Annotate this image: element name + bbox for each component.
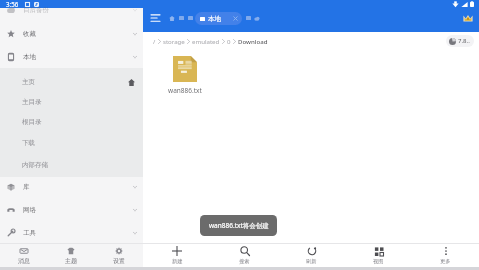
button[interactable]: 消息 bbox=[0, 244, 47, 267]
button[interactable]: Tab bbox=[188, 16, 193, 20]
button[interactable]: 内部存储 bbox=[0, 157, 143, 173]
staticText: 主题 bbox=[65, 257, 77, 265]
button[interactable]: 本地 bbox=[195, 12, 242, 25]
staticText: 搜索 bbox=[239, 258, 250, 265]
button[interactable]: 视图 bbox=[345, 244, 412, 267]
button[interactable] bbox=[173, 56, 197, 82]
button[interactable]: 设置 bbox=[95, 244, 143, 267]
button[interactable]: Menu bbox=[148, 10, 162, 26]
staticText: 收藏 bbox=[23, 30, 36, 38]
staticText: 目后备份 bbox=[23, 6, 49, 14]
button[interactable]: 库 bbox=[0, 179, 143, 195]
button[interactable]: VIP bbox=[462, 12, 474, 24]
staticText: 视图 bbox=[373, 258, 384, 265]
button[interactable]: 主页 bbox=[0, 74, 143, 90]
staticText: wan886.txt bbox=[168, 86, 202, 95]
button[interactable]: / bbox=[153, 37, 156, 45]
staticText: 本地 bbox=[23, 53, 36, 61]
staticText: 刷新 bbox=[306, 258, 317, 265]
button[interactable]: Home tab bbox=[169, 16, 175, 21]
staticText: 7.8.. bbox=[458, 37, 470, 45]
button[interactable]: 主目录 bbox=[0, 94, 143, 110]
staticText: 主页 bbox=[22, 78, 35, 86]
button[interactable]: 更多 bbox=[412, 244, 479, 267]
staticText: 主目录 bbox=[22, 98, 42, 106]
staticText: 3:56 bbox=[6, 0, 19, 8]
button[interactable]: 7.8.. bbox=[446, 35, 474, 47]
staticText: 本地 bbox=[208, 15, 221, 23]
button[interactable]: 刷新 bbox=[278, 244, 345, 267]
button[interactable]: storage bbox=[163, 37, 185, 45]
button[interactable]: Download bbox=[238, 37, 268, 45]
staticText: 设置 bbox=[113, 257, 125, 265]
staticText: 工具 bbox=[23, 229, 36, 237]
button[interactable]: emulated bbox=[192, 37, 220, 45]
button[interactable]: 本地 bbox=[0, 49, 143, 65]
staticText: wan886.txt将会创建 bbox=[209, 221, 269, 230]
staticText: 网络 bbox=[23, 206, 36, 214]
staticText: 消息 bbox=[18, 257, 30, 265]
staticText: 根目录 bbox=[22, 118, 42, 126]
staticText: 下载 bbox=[22, 139, 35, 147]
button[interactable]: 工具 bbox=[0, 225, 143, 241]
button[interactable]: Cloud tab bbox=[254, 16, 260, 21]
button[interactable]: 搜索 bbox=[211, 244, 278, 267]
button[interactable]: 新建 bbox=[143, 244, 211, 267]
button[interactable]: Close tab bbox=[233, 16, 238, 21]
staticText: 内部存储 bbox=[22, 161, 48, 169]
button[interactable]: 主题 bbox=[47, 244, 95, 267]
button[interactable]: Tab bbox=[246, 16, 251, 20]
button[interactable]: 0 bbox=[227, 37, 231, 45]
button[interactable]: 下载 bbox=[0, 135, 143, 151]
button[interactable]: 收藏 bbox=[0, 26, 143, 42]
button[interactable]: 网络 bbox=[0, 202, 143, 218]
staticText: 更多 bbox=[440, 258, 451, 265]
button[interactable]: 根目录 bbox=[0, 114, 143, 130]
button[interactable]: Tab bbox=[179, 16, 184, 20]
button[interactable]: 目后备份 bbox=[0, 2, 143, 18]
staticText: 新建 bbox=[172, 258, 183, 265]
staticText: 库 bbox=[23, 183, 30, 191]
